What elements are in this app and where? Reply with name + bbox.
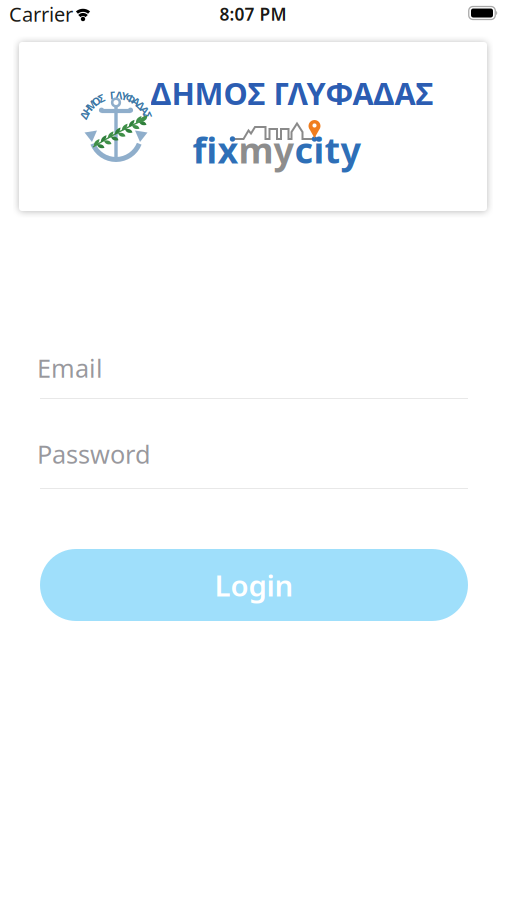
staticText: Υ — [122, 89, 129, 103]
staticText: ΔΗΜΟΣ ΓΛΥΦΑΔΑΣ — [150, 73, 433, 113]
staticText: Password — [37, 437, 151, 471]
staticText: fix — [192, 126, 238, 173]
staticText: Φ — [126, 91, 136, 105]
staticText: my — [238, 126, 294, 173]
staticText: 8:07 PM — [219, 2, 286, 25]
staticText: Μ — [86, 98, 96, 112]
staticText: Δ — [81, 108, 88, 122]
staticText: Α — [141, 103, 148, 117]
staticText: Α — [133, 94, 140, 108]
staticText — [105, 89, 108, 103]
staticText: Σ — [145, 108, 151, 122]
staticText: Λ — [116, 88, 123, 102]
staticText: Ο — [92, 94, 100, 108]
staticText: Γ — [110, 88, 116, 102]
staticText: Login — [214, 565, 293, 604]
staticText: city — [294, 126, 361, 173]
button[interactable]: Login — [40, 549, 468, 621]
button[interactable]: Email — [37, 351, 465, 385]
staticText: Carrier — [9, 1, 73, 27]
staticText: Email — [37, 351, 103, 385]
staticText: Σ — [98, 91, 104, 105]
staticText: Δ — [137, 98, 144, 112]
staticText: Η — [83, 103, 91, 117]
button[interactable]: Password — [37, 437, 465, 471]
